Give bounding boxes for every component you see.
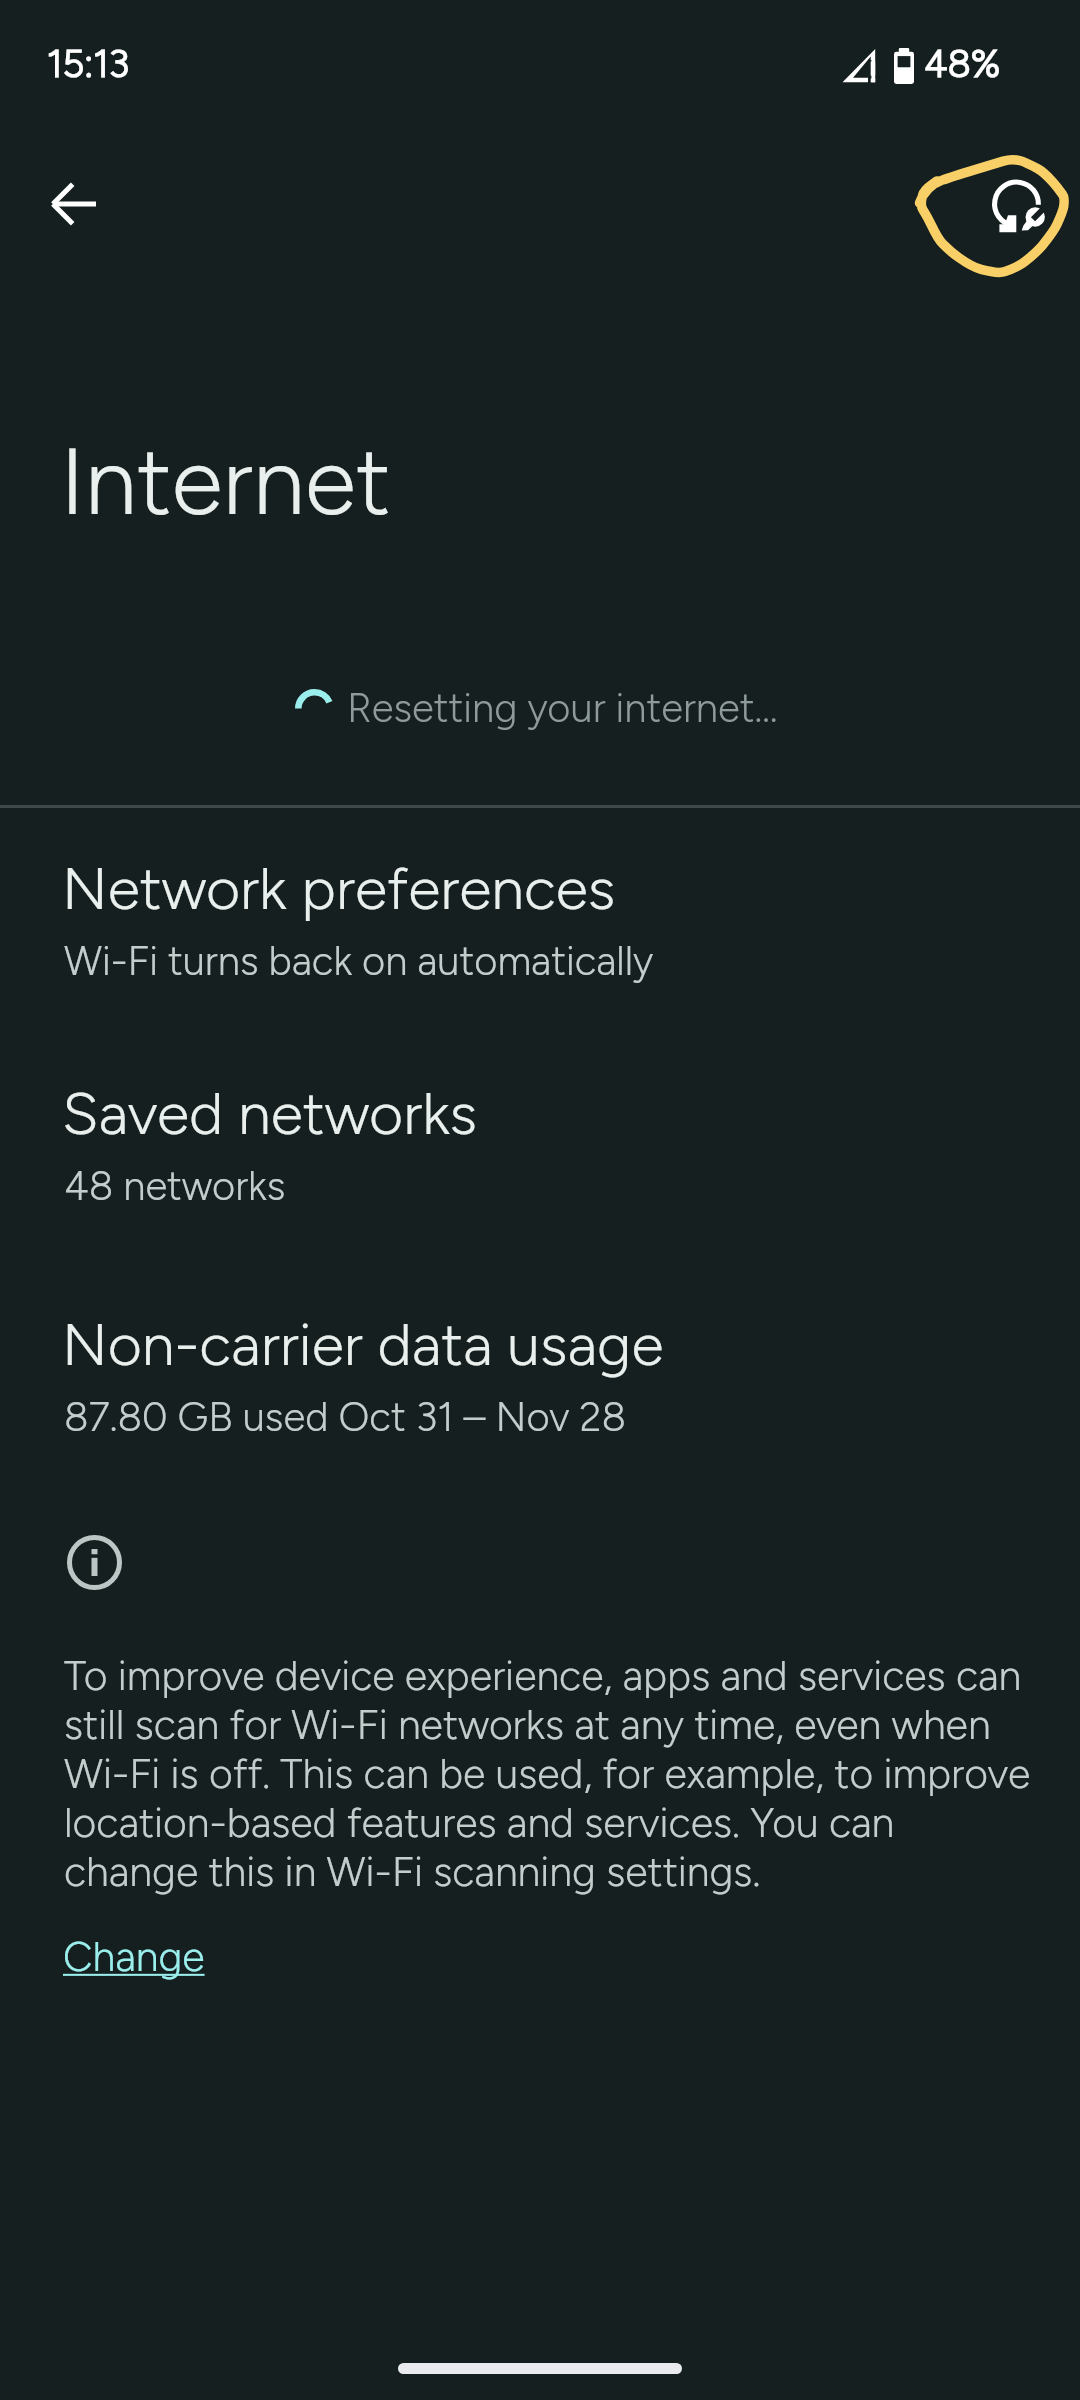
staticText: Non-carrier data usage [62,1309,664,1380]
button[interactable]: Reset internet settings [946,158,1066,254]
staticText: Resetting your internet… [347,684,778,732]
staticText: Saved networks [62,1078,478,1149]
button[interactable]: Change [63,1932,205,1981]
staticText: Wi-Fi turns back on automatically [64,937,654,985]
staticText: Change [63,1932,205,1981]
button[interactable]: Back [26,156,122,252]
staticText: 15:13 [47,41,130,87]
button[interactable]: Network preferences [0,851,1080,1003]
button[interactable]: Saved networks [0,1076,1080,1228]
staticText: Network preferences [62,853,616,924]
button[interactable]: Non-carrier data usage [0,1307,1080,1459]
staticText: To improve device experience, apps and s… [64,1651,1034,1896]
staticText: 48 networks [64,1162,286,1210]
staticText: 48% [924,41,1001,87]
staticText: Internet [60,425,391,538]
staticText: 87.80 GB used Oct 31 – Nov 28 [64,1393,627,1441]
